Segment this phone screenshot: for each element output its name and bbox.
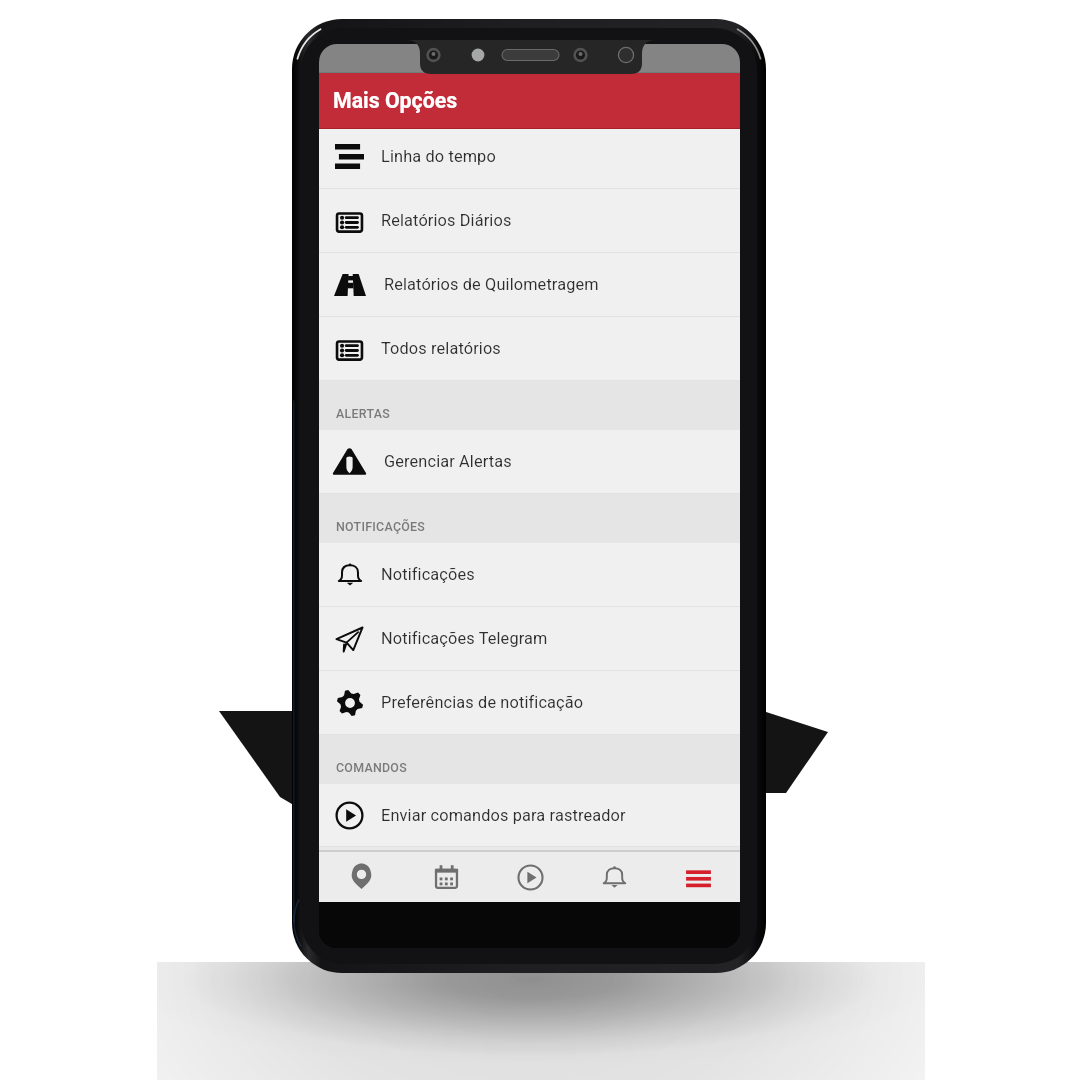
button[interactable]: Todos relatórios xyxy=(319,317,740,381)
staticText: Linha do tempo xyxy=(381,147,496,166)
button[interactable]: Gerenciar Alertas xyxy=(319,430,740,494)
staticText: Notificações Telegram xyxy=(381,629,548,648)
staticText: Notificações xyxy=(381,565,475,584)
staticText: Relatórios de Quilometragem xyxy=(384,275,599,294)
button[interactable]: Relatórios Diários xyxy=(319,189,740,253)
button[interactable]: Notificações Telegram xyxy=(319,607,740,671)
button[interactable]: Linha do tempo xyxy=(319,129,740,189)
button[interactable]: Enviar comandos para rastreador xyxy=(319,784,740,847)
button[interactable]: Notificações xyxy=(319,543,740,607)
staticText: NOTIFICAÇÕES xyxy=(336,519,426,534)
staticText: Mais Opções xyxy=(333,88,458,113)
staticText: ALERTAS xyxy=(336,406,390,421)
staticText: COMANDOS xyxy=(336,760,407,775)
button[interactable]: Calendar xyxy=(404,852,488,902)
staticText: Todos relatórios xyxy=(381,339,501,358)
staticText: Relatórios Diários xyxy=(381,211,512,230)
staticText: Gerenciar Alertas xyxy=(384,452,512,471)
button[interactable]: Alerts xyxy=(572,852,656,902)
button[interactable]: Playback xyxy=(488,852,572,902)
button[interactable]: Relatórios de Quilometragem xyxy=(319,253,740,317)
staticText: Enviar comandos para rastreador xyxy=(381,806,626,825)
button[interactable]: Preferências de notificação xyxy=(319,671,740,735)
button[interactable]: More options xyxy=(656,852,740,902)
staticText: Preferências de notificação xyxy=(381,693,584,712)
button[interactable]: Map xyxy=(319,852,404,902)
